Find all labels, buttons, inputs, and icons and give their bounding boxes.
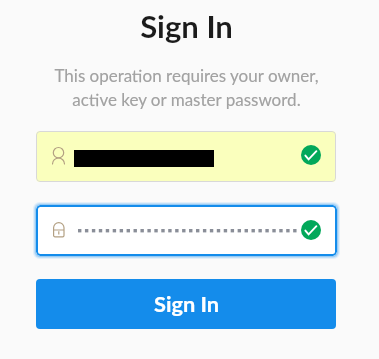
other: Valid (301, 145, 321, 165)
other: Password (53, 222, 66, 239)
staticText: Sign In (154, 290, 220, 316)
other: User (52, 146, 66, 166)
button[interactable]: User (36, 131, 336, 182)
staticText: Sign In (0, 7, 376, 44)
button[interactable]: Password (36, 205, 337, 256)
other: Valid (301, 220, 321, 240)
button[interactable]: Sign In (36, 279, 336, 329)
staticText: This operation requires your owner, acti… (0, 65, 376, 110)
